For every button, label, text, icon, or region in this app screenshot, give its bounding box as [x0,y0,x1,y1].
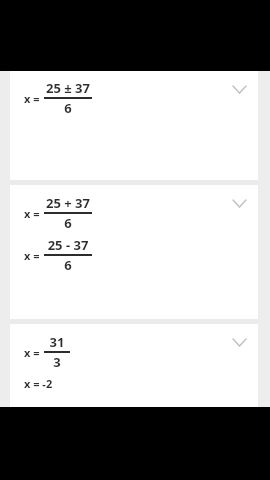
staticText: 25 + 37 [44,194,92,212]
button[interactable]: Expand step [226,329,252,355]
button[interactable]: x = [10,324,258,407]
staticText: 25 - 37 [44,236,92,254]
staticText: 25 ± 37 [44,79,92,97]
button[interactable]: Expand step [226,190,252,216]
staticText: 6 [44,214,92,232]
staticText: x = [24,206,40,221]
staticText: x = [24,91,40,106]
staticText: x = [24,248,40,263]
staticText: 6 [44,256,92,274]
staticText: 3 [44,353,70,371]
staticText: 31 [44,333,70,351]
staticText: x = [24,345,40,360]
staticText: x = -2 [24,376,53,391]
staticText: 6 [44,99,92,117]
button[interactable]: x = [10,71,258,180]
button[interactable]: Expand step [226,76,252,102]
button[interactable]: x = [10,185,258,319]
